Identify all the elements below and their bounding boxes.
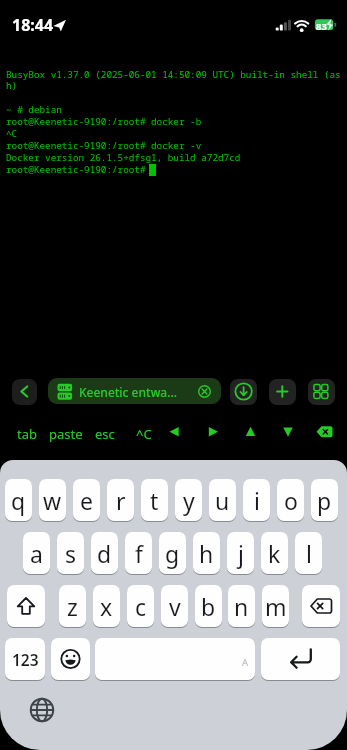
staticText: p <box>317 485 332 516</box>
button[interactable]: s <box>57 532 84 574</box>
button[interactable] <box>48 378 221 404</box>
button[interactable] <box>45 418 88 446</box>
button[interactable]: a <box>23 532 50 574</box>
staticText: v <box>169 591 181 622</box>
button[interactable]: v <box>161 585 188 627</box>
button[interactable] <box>10 418 45 446</box>
staticText: 18:44 <box>12 14 54 36</box>
staticText: paste <box>49 425 83 443</box>
button[interactable]: b <box>195 585 222 627</box>
button[interactable]: d <box>91 532 118 574</box>
staticText: e <box>80 485 93 516</box>
button[interactable] <box>302 585 340 627</box>
button[interactable]: x <box>93 585 120 627</box>
button[interactable] <box>308 418 342 446</box>
staticText: q <box>11 485 26 516</box>
staticText: A <box>242 656 249 669</box>
button[interactable] <box>95 638 255 680</box>
button[interactable]: f <box>125 532 152 574</box>
staticText: j <box>238 538 244 569</box>
button[interactable] <box>230 379 257 405</box>
button[interactable]: q <box>5 479 32 521</box>
staticText: tab <box>17 425 37 443</box>
button[interactable]: c <box>127 585 154 627</box>
button[interactable] <box>12 379 37 405</box>
staticText: m <box>265 591 287 622</box>
button[interactable]: u <box>209 479 236 521</box>
button[interactable] <box>88 418 123 446</box>
staticText: 123 <box>12 649 39 670</box>
staticText: h <box>199 538 214 569</box>
button[interactable] <box>7 585 45 627</box>
button[interactable]: 123 <box>5 638 45 680</box>
button[interactable] <box>269 379 296 405</box>
button[interactable] <box>129 418 161 446</box>
button[interactable]: h <box>193 532 220 574</box>
button[interactable] <box>308 379 335 405</box>
staticText: 83 <box>316 20 327 33</box>
staticText: ^C <box>136 425 152 443</box>
button[interactable]: k <box>261 532 288 574</box>
staticText: t <box>150 485 159 516</box>
staticText: a <box>30 538 43 569</box>
staticText: s <box>65 538 77 569</box>
staticText: u <box>215 485 230 516</box>
staticText: n <box>234 591 249 622</box>
button[interactable] <box>28 696 56 724</box>
button[interactable]: i <box>243 479 270 521</box>
button[interactable]: j <box>227 532 254 574</box>
button[interactable]: o <box>277 479 304 521</box>
button[interactable]: g <box>159 532 186 574</box>
staticText: y <box>183 485 195 516</box>
button[interactable]: t <box>141 479 168 521</box>
staticText: w <box>43 485 62 516</box>
staticText: f <box>135 538 143 569</box>
button[interactable]: p <box>311 479 338 521</box>
staticText: o <box>284 485 298 516</box>
button[interactable] <box>236 418 266 446</box>
button[interactable] <box>273 418 303 446</box>
button[interactable]: r <box>107 479 134 521</box>
staticText: x <box>100 591 113 622</box>
staticText: l <box>306 538 312 569</box>
staticText: r <box>116 485 126 516</box>
button[interactable]: e <box>73 479 100 521</box>
button[interactable]: w <box>39 479 66 521</box>
staticText: b <box>201 591 216 622</box>
staticText: Keenetic entwa... <box>79 384 177 400</box>
staticText: BusyBox v1.37.0 (2025-06-01 14:50:09 UTC… <box>6 68 341 176</box>
button[interactable] <box>198 418 228 446</box>
staticText: k <box>268 538 281 569</box>
button[interactable] <box>160 418 190 446</box>
button[interactable]: n <box>228 585 255 627</box>
button[interactable] <box>51 638 90 680</box>
staticText: g <box>165 538 180 569</box>
staticText: i <box>254 485 260 516</box>
staticText: z <box>67 591 78 622</box>
button[interactable]: z <box>59 585 86 627</box>
button[interactable] <box>261 638 340 680</box>
button[interactable]: m <box>262 585 289 627</box>
staticText: esc <box>95 425 115 443</box>
button[interactable]: y <box>175 479 202 521</box>
staticText: c <box>135 591 147 622</box>
button[interactable]: l <box>295 532 322 574</box>
staticText: d <box>97 538 112 569</box>
